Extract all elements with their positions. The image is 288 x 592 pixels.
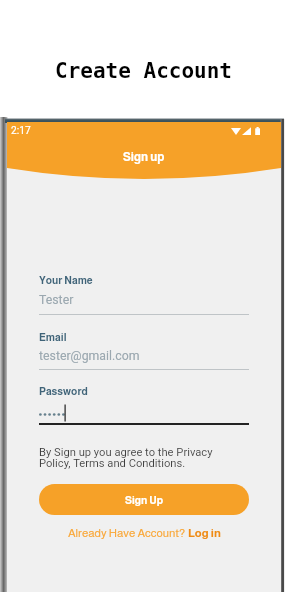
other: Status icons <box>231 127 260 135</box>
staticText: Sign Up <box>125 494 164 506</box>
staticText: Create Account <box>55 59 233 83</box>
staticText: Tester <box>39 293 74 307</box>
staticText: Log in <box>188 527 221 540</box>
staticText: Already Have Account? <box>68 527 188 540</box>
staticText: tester@gmail.com <box>39 349 140 363</box>
button[interactable]: Already Have Account? <box>39 526 249 540</box>
staticText: Email <box>39 331 67 343</box>
staticText: 2:17 <box>11 125 31 137</box>
button[interactable]: Sign Up <box>39 484 249 515</box>
staticText: Sign up <box>123 150 165 163</box>
staticText: Your Name <box>39 274 93 286</box>
staticText: Password <box>39 385 88 397</box>
staticText: By Sign up you agree to the Privacy Poli… <box>39 446 213 470</box>
